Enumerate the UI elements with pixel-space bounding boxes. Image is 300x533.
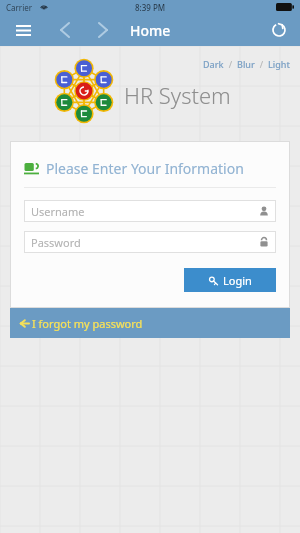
staticText: Blur [237, 58, 255, 70]
staticText: Dark [203, 58, 224, 70]
staticText: Home [130, 21, 171, 40]
button[interactable]: Forward [90, 17, 116, 43]
button[interactable]: Username [24, 200, 276, 222]
staticText: HR System [124, 80, 231, 110]
staticText: 8:39 PM [135, 2, 166, 13]
button[interactable]: Menu [10, 17, 36, 43]
button[interactable]: Refresh [266, 17, 292, 43]
staticText: Light [268, 58, 290, 70]
button[interactable]: Light [268, 58, 290, 70]
staticText: Login [223, 273, 252, 288]
staticText: / [255, 58, 268, 70]
button[interactable]: Password [24, 231, 276, 253]
staticText: Password [31, 235, 81, 250]
staticText: Username [31, 204, 85, 219]
button[interactable]: I forgot my password [10, 308, 290, 338]
staticText: Carrier [6, 2, 33, 13]
staticText: Please Enter Your Information [46, 159, 244, 178]
button[interactable]: Dark [203, 58, 224, 70]
button[interactable]: Login [184, 268, 276, 292]
staticText: I forgot my password [32, 316, 143, 331]
staticText: / [224, 58, 237, 70]
button[interactable]: Blur [237, 58, 255, 70]
button[interactable]: Back [52, 17, 78, 43]
